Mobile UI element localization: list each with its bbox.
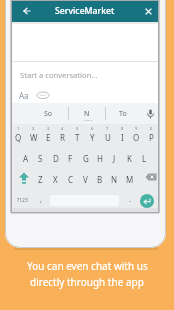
button[interactable]: . xyxy=(129,195,131,205)
button[interactable]: I xyxy=(115,128,130,146)
button[interactable] xyxy=(145,8,152,15)
button[interactable]: E xyxy=(41,128,56,146)
staticText: Aa xyxy=(19,90,29,101)
staticText: Start a conversation... xyxy=(20,70,98,80)
button[interactable]: J xyxy=(107,149,122,167)
staticText: . xyxy=(129,195,131,205)
staticText: So xyxy=(44,109,53,119)
staticText: I xyxy=(121,132,124,143)
button[interactable] xyxy=(140,194,154,208)
staticText: 8 xyxy=(121,126,124,131)
staticText: 0 xyxy=(150,126,153,131)
staticText: B xyxy=(97,174,103,185)
staticText: ServiceMarket xyxy=(55,5,115,17)
staticText: 1 xyxy=(17,126,20,131)
button[interactable]: N xyxy=(107,170,122,188)
staticText: 2 xyxy=(32,126,35,131)
button[interactable]: H xyxy=(92,149,107,167)
staticText: , xyxy=(40,195,42,205)
staticText: To xyxy=(119,109,127,119)
staticText: directly through the app xyxy=(30,275,144,289)
staticText: E xyxy=(46,132,51,143)
button[interactable]: R xyxy=(55,128,70,146)
staticText: S xyxy=(38,153,43,164)
button[interactable]: U xyxy=(100,128,115,146)
staticText: You can even chat with us xyxy=(27,259,148,273)
button[interactable]: Aa xyxy=(19,90,29,101)
staticText: 4 xyxy=(61,126,64,131)
staticText: F xyxy=(68,153,73,164)
button[interactable]: N xyxy=(73,106,101,121)
button[interactable]: A xyxy=(18,149,33,167)
staticText: D xyxy=(53,153,59,164)
button[interactable]: K xyxy=(122,149,137,167)
staticText: H xyxy=(97,153,103,164)
button[interactable]: O xyxy=(129,128,144,146)
button[interactable]: F xyxy=(63,149,78,167)
staticText: Q xyxy=(15,132,22,143)
staticText: 3 xyxy=(47,126,50,131)
button[interactable]: So xyxy=(34,106,63,121)
button[interactable]: P xyxy=(144,128,159,146)
button[interactable]: Start a conversation... xyxy=(20,70,98,80)
button[interactable]: Z xyxy=(33,170,48,188)
staticText: O xyxy=(133,132,140,143)
staticText: P xyxy=(149,132,154,143)
staticText: V xyxy=(83,174,88,185)
staticText: X xyxy=(53,174,58,185)
button[interactable]: , xyxy=(40,195,42,205)
staticText: N xyxy=(84,109,90,119)
staticText: 7 xyxy=(106,126,109,131)
staticText: ?123 xyxy=(17,197,28,204)
button[interactable] xyxy=(146,109,155,120)
staticText: A xyxy=(23,153,29,164)
button[interactable]: D xyxy=(48,149,63,167)
button[interactable]: C xyxy=(63,170,78,188)
staticText: U xyxy=(105,132,111,143)
staticText: W xyxy=(30,132,38,143)
staticText: N xyxy=(111,174,118,185)
staticText: 5 xyxy=(76,126,79,131)
button[interactable] xyxy=(36,91,49,99)
button[interactable]: G xyxy=(78,149,93,167)
button[interactable]: B xyxy=(92,170,107,188)
button[interactable]: V xyxy=(78,170,93,188)
staticText: R xyxy=(60,132,65,143)
button[interactable]: Y xyxy=(85,128,100,146)
staticText: 6 xyxy=(91,126,94,131)
button[interactable]: Q xyxy=(11,128,26,146)
button[interactable] xyxy=(18,172,30,184)
staticText: G xyxy=(83,153,89,164)
button[interactable]: X xyxy=(48,170,63,188)
staticText: J xyxy=(113,153,116,164)
button[interactable]: To xyxy=(108,106,137,121)
button[interactable]: W xyxy=(26,128,41,146)
staticText: Z xyxy=(38,174,43,185)
button[interactable]: ServiceMarket xyxy=(11,0,159,22)
staticText: K xyxy=(127,153,132,164)
staticText: Y xyxy=(90,132,95,143)
staticText: 9 xyxy=(135,126,138,131)
staticText: L xyxy=(142,153,147,164)
button[interactable] xyxy=(145,173,158,182)
button[interactable]: S xyxy=(33,149,48,167)
staticText: M xyxy=(126,174,134,185)
button[interactable] xyxy=(23,7,31,15)
button[interactable]: L xyxy=(137,149,152,167)
staticText: T xyxy=(75,132,80,143)
button[interactable]: M xyxy=(122,170,137,188)
staticText: C xyxy=(68,174,74,185)
button[interactable]: ?123 xyxy=(17,197,28,204)
button[interactable]: T xyxy=(70,128,85,146)
